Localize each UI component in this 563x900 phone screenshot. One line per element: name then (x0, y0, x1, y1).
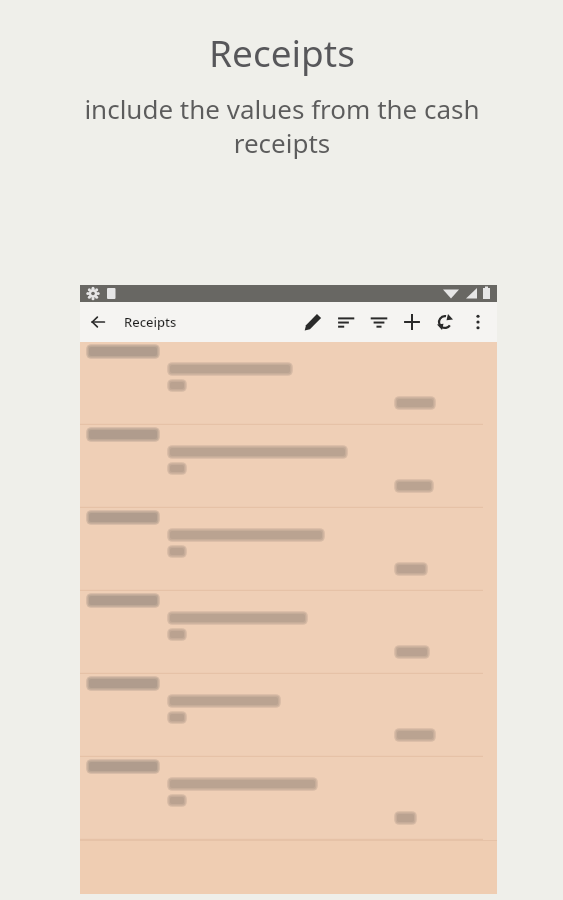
button[interactable]: Filter (362, 302, 395, 342)
staticText: Receipts (124, 313, 177, 331)
staticText: include the values from the cash receipt… (34, 91, 530, 161)
button[interactable]: Add (395, 302, 428, 342)
button[interactable] (80, 508, 497, 591)
button[interactable]: Back (80, 304, 116, 340)
button[interactable] (80, 342, 497, 425)
button[interactable]: More options (461, 302, 494, 342)
button[interactable] (80, 674, 497, 757)
button[interactable]: Edit (296, 302, 329, 342)
button[interactable]: Sync (428, 302, 461, 342)
button[interactable]: Sort (329, 302, 362, 342)
button[interactable] (80, 757, 497, 840)
button[interactable] (80, 591, 497, 674)
staticText: Receipts (209, 27, 355, 77)
button[interactable] (80, 425, 497, 508)
